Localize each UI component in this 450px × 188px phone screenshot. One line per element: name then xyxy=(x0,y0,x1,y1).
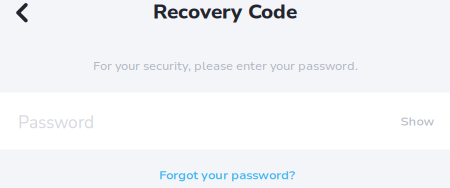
staticText: Password xyxy=(18,111,94,134)
button[interactable]: Password xyxy=(0,92,450,149)
staticText: Recovery Code xyxy=(153,0,297,26)
button[interactable]: Forgot your password? xyxy=(139,158,315,188)
staticText: Forgot your password? xyxy=(159,167,295,184)
staticText: Show xyxy=(400,113,434,130)
button[interactable]: Back xyxy=(4,0,40,28)
staticText: For your security, please enter your pas… xyxy=(93,58,358,74)
button[interactable]: Show xyxy=(384,99,450,144)
